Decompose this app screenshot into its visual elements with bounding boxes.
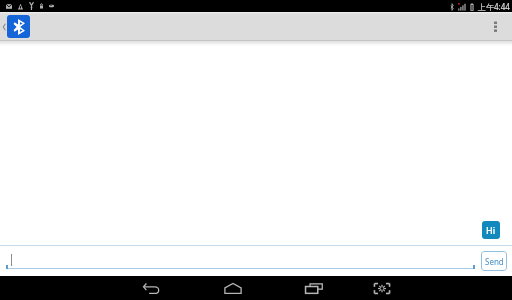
button[interactable]: Back [136,276,167,300]
button[interactable] [6,250,475,269]
button[interactable]: Send [481,251,507,271]
button[interactable]: Home [217,276,249,300]
button[interactable]: Screenshot [366,276,398,300]
button[interactable]: More options [479,12,512,41]
button[interactable]: Bluetooth app icon [7,15,30,38]
staticText: Hi [486,224,496,236]
button[interactable]: Hi [482,221,500,239]
button[interactable]: Recent apps [298,276,330,300]
staticText: 上午4:44 [478,1,510,12]
staticText: Send [485,256,504,267]
